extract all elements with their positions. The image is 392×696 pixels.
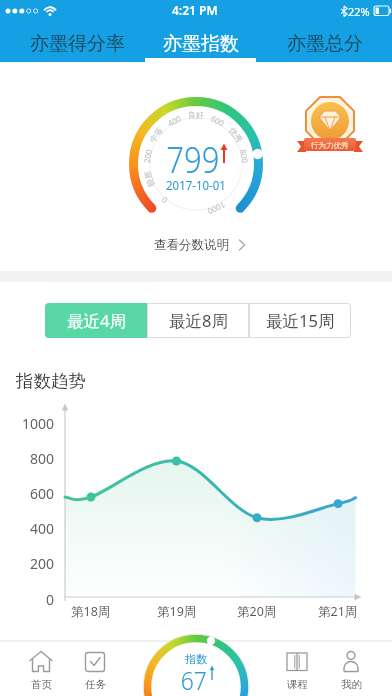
staticText: 67 <box>181 662 207 696</box>
staticText: 800 <box>238 148 251 164</box>
button[interactable] <box>68 643 122 696</box>
staticText: 1000 <box>22 414 55 432</box>
staticText: 任务 <box>85 678 106 691</box>
staticText: 亦墨得分率 <box>30 32 125 56</box>
button[interactable]: 亦墨指数 <box>137 26 265 62</box>
staticText: 指数趋势 <box>16 370 86 392</box>
staticText: 0 <box>158 194 169 206</box>
staticText: 2017-10-01 <box>166 176 226 194</box>
staticText: 200 <box>141 148 154 164</box>
staticText: 中等 <box>147 126 165 144</box>
staticText: 799 <box>166 135 220 183</box>
staticText: 600 <box>209 112 226 129</box>
staticText: 较差 <box>142 170 156 188</box>
button[interactable]: 最近15周 <box>249 303 351 338</box>
staticText: 首页 <box>31 678 52 691</box>
staticText: 亦墨指数 <box>163 32 239 56</box>
staticText: 400 <box>30 519 55 537</box>
staticText: 查看分数说明 <box>154 237 229 253</box>
staticText: 课程 <box>287 678 308 691</box>
staticText: 我的 <box>341 678 362 691</box>
staticText: 600 <box>30 484 55 502</box>
button[interactable]: 亦墨总分 <box>261 26 389 62</box>
button[interactable]: 最近8周 <box>147 303 249 338</box>
staticText: 指数 <box>185 652 207 666</box>
button[interactable]: 查看分数说明 <box>140 234 260 256</box>
staticText: 第21周 <box>318 603 358 620</box>
staticText: 第18周 <box>71 603 111 620</box>
button[interactable]: 亦墨得分率 <box>13 26 141 62</box>
staticText: 800 <box>30 449 55 467</box>
button[interactable] <box>143 634 249 696</box>
staticText: 第19周 <box>157 603 197 620</box>
staticText: 亦墨总分 <box>287 32 363 56</box>
staticText: 最近15周 <box>266 309 335 332</box>
staticText: 优秀 <box>227 126 245 144</box>
button[interactable] <box>324 643 378 696</box>
button[interactable]: 最近4周 <box>45 303 147 338</box>
staticText: 200 <box>30 554 55 572</box>
staticText: 400 <box>165 112 183 129</box>
button[interactable] <box>14 643 68 696</box>
staticText: 良好 <box>188 110 204 120</box>
staticText: 最近4周 <box>67 309 126 332</box>
staticText: 0 <box>46 590 55 608</box>
staticText: 最近8周 <box>169 309 228 332</box>
staticText: 第20周 <box>237 603 277 620</box>
staticText: 4:21 PM <box>172 2 218 18</box>
staticText: 行为力优秀 <box>311 141 349 150</box>
button[interactable] <box>270 643 324 696</box>
staticText: 22% <box>348 4 370 19</box>
staticText: 1000 <box>205 200 227 218</box>
